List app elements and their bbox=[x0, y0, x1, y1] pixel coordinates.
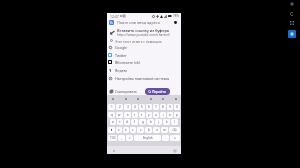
button[interactable]: z bbox=[116, 127, 122, 133]
button[interactable]: Grid bbox=[288, 19, 296, 27]
button[interactable]: . bbox=[162, 135, 169, 141]
button[interactable]: j bbox=[155, 119, 162, 125]
staticText: u bbox=[155, 113, 157, 117]
staticText: g bbox=[142, 120, 144, 124]
button[interactable]: ?123 bbox=[108, 135, 117, 141]
button[interactable]: r bbox=[132, 112, 138, 118]
button[interactable]: 7 bbox=[153, 104, 159, 110]
button[interactable]: u bbox=[153, 112, 159, 118]
button[interactable]: s bbox=[117, 119, 123, 125]
button[interactable]: Поиск или ввод адреса bbox=[109, 19, 178, 26]
button[interactable]: ↵ bbox=[170, 135, 180, 141]
button[interactable]: Google bbox=[108, 43, 180, 51]
staticText: s bbox=[119, 120, 121, 124]
button[interactable]: Move bbox=[288, 0, 296, 8]
staticText: q bbox=[111, 113, 113, 117]
button[interactable]: Clipboard bbox=[110, 96, 115, 101]
button[interactable]: w bbox=[116, 112, 123, 118]
button[interactable]: Paste link bbox=[109, 27, 180, 37]
button[interactable]: 6 bbox=[146, 104, 152, 110]
button[interactable]: g bbox=[139, 119, 146, 125]
button[interactable]: 0 bbox=[174, 104, 180, 110]
button[interactable]: Active tool bbox=[288, 30, 296, 38]
button[interactable]: , bbox=[118, 135, 125, 141]
button[interactable]: p bbox=[174, 112, 180, 118]
other: Paste link bbox=[109, 29, 115, 35]
button[interactable]: k bbox=[163, 119, 170, 125]
button[interactable]: GIF bbox=[123, 96, 128, 101]
button[interactable]: Скопировать bbox=[110, 88, 138, 95]
button[interactable]: 8 bbox=[160, 104, 166, 110]
button[interactable]: ♪ bbox=[126, 135, 133, 141]
button[interactable]: ⬆ bbox=[108, 127, 115, 133]
button[interactable]: t bbox=[139, 112, 145, 118]
staticText: ?123 bbox=[110, 136, 116, 140]
staticText: 12:47 bbox=[110, 14, 119, 19]
staticText: t bbox=[141, 113, 143, 117]
button[interactable]: x bbox=[123, 127, 129, 133]
button[interactable]: f bbox=[131, 119, 138, 125]
button[interactable]: b bbox=[145, 127, 152, 133]
button[interactable]: q bbox=[108, 112, 115, 118]
staticText: English bbox=[143, 136, 153, 140]
staticText: ↵ bbox=[174, 136, 177, 140]
button[interactable]: v bbox=[137, 127, 144, 133]
button[interactable]: Settings bbox=[148, 96, 153, 101]
staticText: https://www.youtube.com/channel/UCfqlxnK… bbox=[117, 33, 180, 37]
staticText: o bbox=[169, 113, 171, 117]
button[interactable]: e bbox=[124, 112, 131, 118]
staticText: b bbox=[148, 128, 150, 132]
staticText: , bbox=[121, 136, 122, 140]
button[interactable]: 3 bbox=[124, 104, 131, 110]
button[interactable]: 5 bbox=[139, 104, 145, 110]
staticText: e bbox=[127, 113, 129, 117]
button[interactable]: 9 bbox=[167, 104, 173, 110]
button[interactable]: Яндекс bbox=[108, 66, 180, 74]
staticText: ⌫ bbox=[172, 128, 177, 132]
staticText: . bbox=[165, 136, 166, 140]
button[interactable]: y bbox=[146, 112, 152, 118]
button[interactable]: o bbox=[167, 112, 173, 118]
button[interactable]: h bbox=[147, 119, 154, 125]
staticText: ⬆ bbox=[110, 128, 113, 132]
staticText: 5 bbox=[141, 105, 143, 109]
button[interactable]: 4 bbox=[132, 104, 138, 110]
button[interactable]: Recents bbox=[173, 149, 176, 152]
staticText: m bbox=[163, 128, 166, 132]
button[interactable]: 1 bbox=[108, 104, 115, 110]
staticText: 9 bbox=[169, 105, 171, 109]
button[interactable]: Перейти bbox=[148, 89, 167, 94]
button[interactable]: c bbox=[130, 127, 136, 133]
staticText: 2 bbox=[119, 105, 121, 109]
button[interactable]: More options bbox=[173, 20, 178, 25]
staticText: f bbox=[134, 120, 136, 124]
button[interactable]: d bbox=[124, 119, 130, 125]
button[interactable]: 2 bbox=[116, 104, 123, 110]
button[interactable]: l bbox=[171, 119, 178, 125]
button[interactable]: ⌫ bbox=[169, 127, 180, 133]
button[interactable]: Sticker bbox=[135, 96, 140, 101]
staticText: 7 bbox=[155, 105, 157, 109]
staticText: 8 bbox=[162, 105, 164, 109]
button[interactable]: ВКонтакте (vk) bbox=[108, 58, 180, 66]
button[interactable]: More bbox=[173, 96, 178, 101]
button[interactable]: Themes bbox=[160, 96, 165, 101]
button[interactable]: English bbox=[134, 135, 161, 141]
button[interactable]: i bbox=[160, 112, 166, 118]
staticText: 78% bbox=[173, 14, 179, 18]
button[interactable]: m bbox=[161, 127, 168, 133]
button[interactable]: Rotate bbox=[288, 10, 296, 18]
button[interactable]: Back bbox=[112, 149, 115, 152]
staticText: ♪ bbox=[129, 136, 131, 140]
staticText: Вставить ссылку из буфера обмена bbox=[117, 28, 180, 33]
button[interactable]: Настройки поисковой системы bbox=[108, 74, 180, 82]
staticText: d bbox=[126, 120, 128, 124]
staticText: y bbox=[148, 113, 150, 117]
button[interactable]: a bbox=[110, 119, 116, 125]
button[interactable]: n bbox=[153, 127, 160, 133]
staticText: Перейти bbox=[152, 89, 167, 94]
staticText: 6 bbox=[148, 105, 150, 109]
staticText: r bbox=[134, 113, 136, 117]
staticText: 1 bbox=[111, 105, 113, 109]
button[interactable]: Twitter bbox=[108, 51, 180, 59]
